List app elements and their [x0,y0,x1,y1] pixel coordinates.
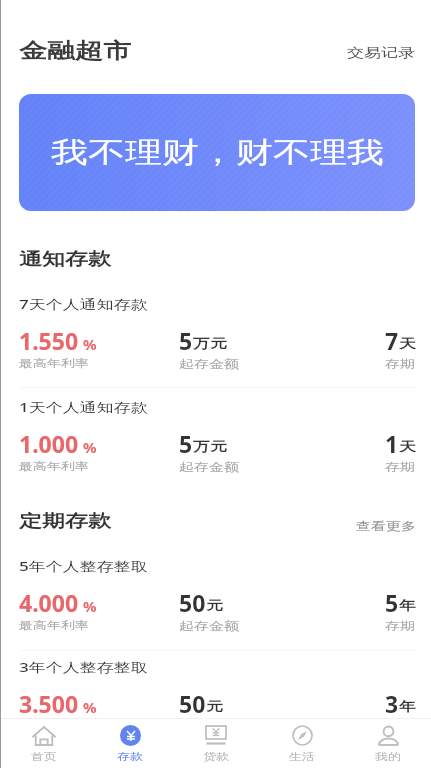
staticText: % [83,697,97,717]
staticText: % [83,596,97,616]
staticText: 万元 [193,438,227,454]
staticText: 万元 [193,335,227,351]
staticText: 我不理财，财不理我 [51,135,384,170]
staticText: 交易记录 [347,44,415,60]
button[interactable]: 首页 [0,719,87,768]
button[interactable]: 我的 [345,719,431,768]
button[interactable]: 定期存款 [19,507,111,536]
staticText: 年 [399,698,416,714]
staticText: 5 [179,428,193,459]
staticText: 贷款 [203,750,229,762]
staticText: 最高年利率 [19,619,89,633]
staticText: 天 [399,438,416,454]
staticText: 4.000 [19,587,79,618]
button[interactable]: 生活 [259,719,345,768]
staticText: 最高年利率 [19,720,89,734]
button[interactable]: 交易记录 [341,38,421,67]
staticText: 存期 [385,460,415,475]
staticText: 定期存款 [19,510,111,532]
button[interactable]: 金融超市 [19,33,131,68]
staticText: 7天个人通知存款 [19,296,148,313]
staticText: % [83,437,97,457]
staticText: 通知存款 [19,248,111,270]
staticText: 生活 [289,750,315,762]
staticText: 元 [206,698,223,714]
staticText: 最高年利率 [19,460,89,474]
staticText: 3.500 [19,688,79,719]
button[interactable]: 通知存款 [19,245,111,274]
staticText: 1天个人通知存款 [19,399,148,416]
staticText: 存期 [385,357,415,372]
staticText: 50 [179,587,206,618]
button[interactable]: 查看更多 [351,514,421,539]
button[interactable]: 3年个人整存整取 [0,654,431,754]
staticText: 1.000 [19,428,79,459]
staticText: 天 [399,335,416,351]
staticText: 查看更多 [356,519,416,534]
staticText: 3年个人整存整取 [19,659,148,676]
button[interactable]: 5年个人整存整取 [0,553,431,653]
button[interactable]: 存款 [87,719,173,768]
staticText: 年 [399,597,416,613]
staticText: 3 [385,688,399,719]
staticText: 存期 [385,619,415,634]
staticText: 1.550 [19,325,79,356]
staticText: 存期 [385,720,415,735]
staticText: 我的 [375,750,401,762]
staticText: 最高年利率 [19,357,89,371]
staticText: 金融超市 [19,37,131,64]
button[interactable]: 贷款 [173,719,259,768]
staticText: 5 [385,587,399,618]
staticText: 5 [179,325,193,356]
button[interactable]: 7天个人通知存款 [0,291,431,391]
staticText: 元 [206,597,223,613]
staticText: 7 [385,325,399,356]
staticText: 首页 [31,750,57,762]
staticText: 起存金额 [179,619,239,634]
button[interactable]: 我不理财，财不理我 [19,94,415,211]
staticText: 存款 [117,750,143,762]
staticText: 起存金额 [179,460,239,475]
staticText: 起存金额 [179,357,239,372]
button[interactable]: 1天个人通知存款 [0,394,431,494]
staticText: 1 [385,428,399,459]
staticText: 起存金额 [179,720,239,735]
staticText: 50 [179,688,206,719]
staticText: 5年个人整存整取 [19,558,148,575]
staticText: % [83,334,97,354]
